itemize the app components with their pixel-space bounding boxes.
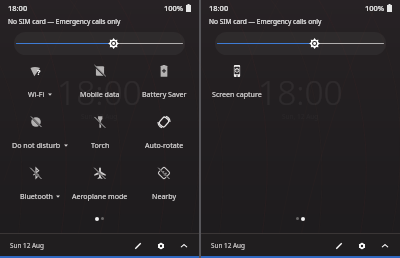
button[interactable]: Collapse (376, 237, 393, 254)
staticText: 18:00 (8, 3, 28, 13)
staticText: Torch (91, 140, 110, 150)
button[interactable]: Mobile data (68, 65, 132, 99)
button[interactable]: Nearby (132, 167, 196, 201)
staticText: 100% (365, 3, 385, 13)
staticText: Mobile data (80, 89, 120, 99)
button[interactable]: Edit (330, 237, 347, 254)
staticText: Auto-rotate (145, 140, 184, 150)
button[interactable]: Do not disturb (4, 116, 68, 150)
button[interactable]: Brightness (14, 32, 185, 55)
staticText: No SIM card — Emergency calls only (8, 17, 121, 26)
staticText: 18:00 (258, 69, 343, 115)
button[interactable]: Aeroplane mode (68, 167, 132, 201)
button[interactable]: Torch (68, 116, 132, 150)
staticText: 18:00 (209, 3, 229, 13)
button[interactable]: Edit (129, 237, 146, 254)
button[interactable]: Battery Saver (132, 65, 196, 99)
button[interactable]: ? (4, 65, 68, 99)
staticText: Sun 12 Aug (10, 241, 45, 250)
staticText: 100% (164, 3, 184, 13)
staticText: Aeroplane mode (72, 191, 128, 201)
button[interactable]: Bluetooth (4, 167, 68, 201)
staticText: Nearby (152, 191, 177, 201)
button[interactable]: Auto-rotate (132, 116, 196, 150)
staticText: Bluetooth (20, 191, 53, 201)
staticText: Sun, 12 Aug (81, 112, 118, 121)
button[interactable]: Settings (152, 237, 169, 254)
button[interactable]: Collapse (175, 237, 192, 254)
staticText: Sun 12 Aug (211, 241, 246, 250)
staticText: ? (37, 68, 41, 78)
staticText: 18:00 (57, 69, 142, 115)
staticText: Do not disturb (12, 140, 61, 150)
staticText: Wi-Fi (28, 89, 45, 99)
staticText: Screen capture (212, 89, 262, 99)
button[interactable]: Brightness (215, 32, 386, 55)
button[interactable]: Screen capture (205, 65, 269, 99)
staticText: Battery Saver (142, 89, 187, 99)
button[interactable]: Settings (353, 237, 370, 254)
staticText: No SIM card — Emergency calls only (209, 17, 322, 26)
